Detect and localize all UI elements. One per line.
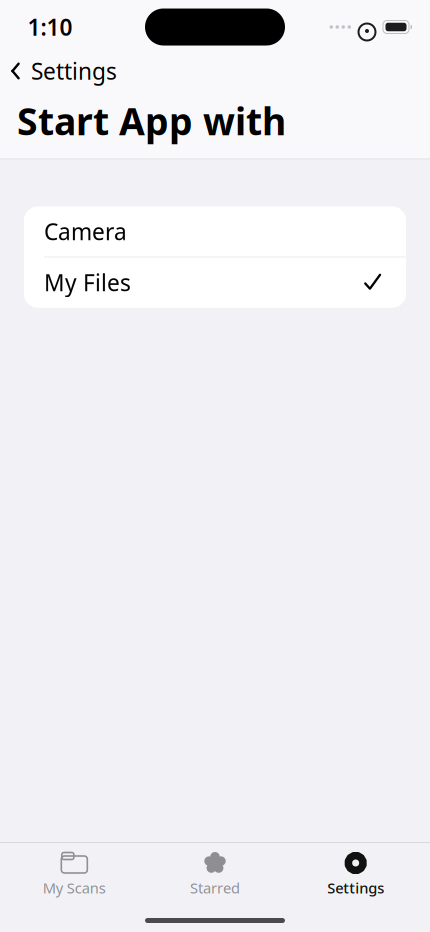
staticText: Settings <box>327 878 384 897</box>
button[interactable]: Settings <box>0 51 117 91</box>
button[interactable]: Starred <box>145 843 285 901</box>
staticText: Camera <box>44 216 127 247</box>
staticText: Start App with <box>17 96 286 146</box>
button[interactable]: My Scans <box>4 843 145 901</box>
staticText: My Files <box>44 267 131 298</box>
button[interactable]: My Files <box>24 258 406 308</box>
staticText: Starred <box>190 878 240 897</box>
staticText: Settings <box>31 56 117 86</box>
button[interactable]: Settings <box>285 843 426 901</box>
staticText: My Scans <box>43 878 106 897</box>
button[interactable]: Camera <box>24 207 406 257</box>
staticText: 1:10 <box>27 12 72 42</box>
